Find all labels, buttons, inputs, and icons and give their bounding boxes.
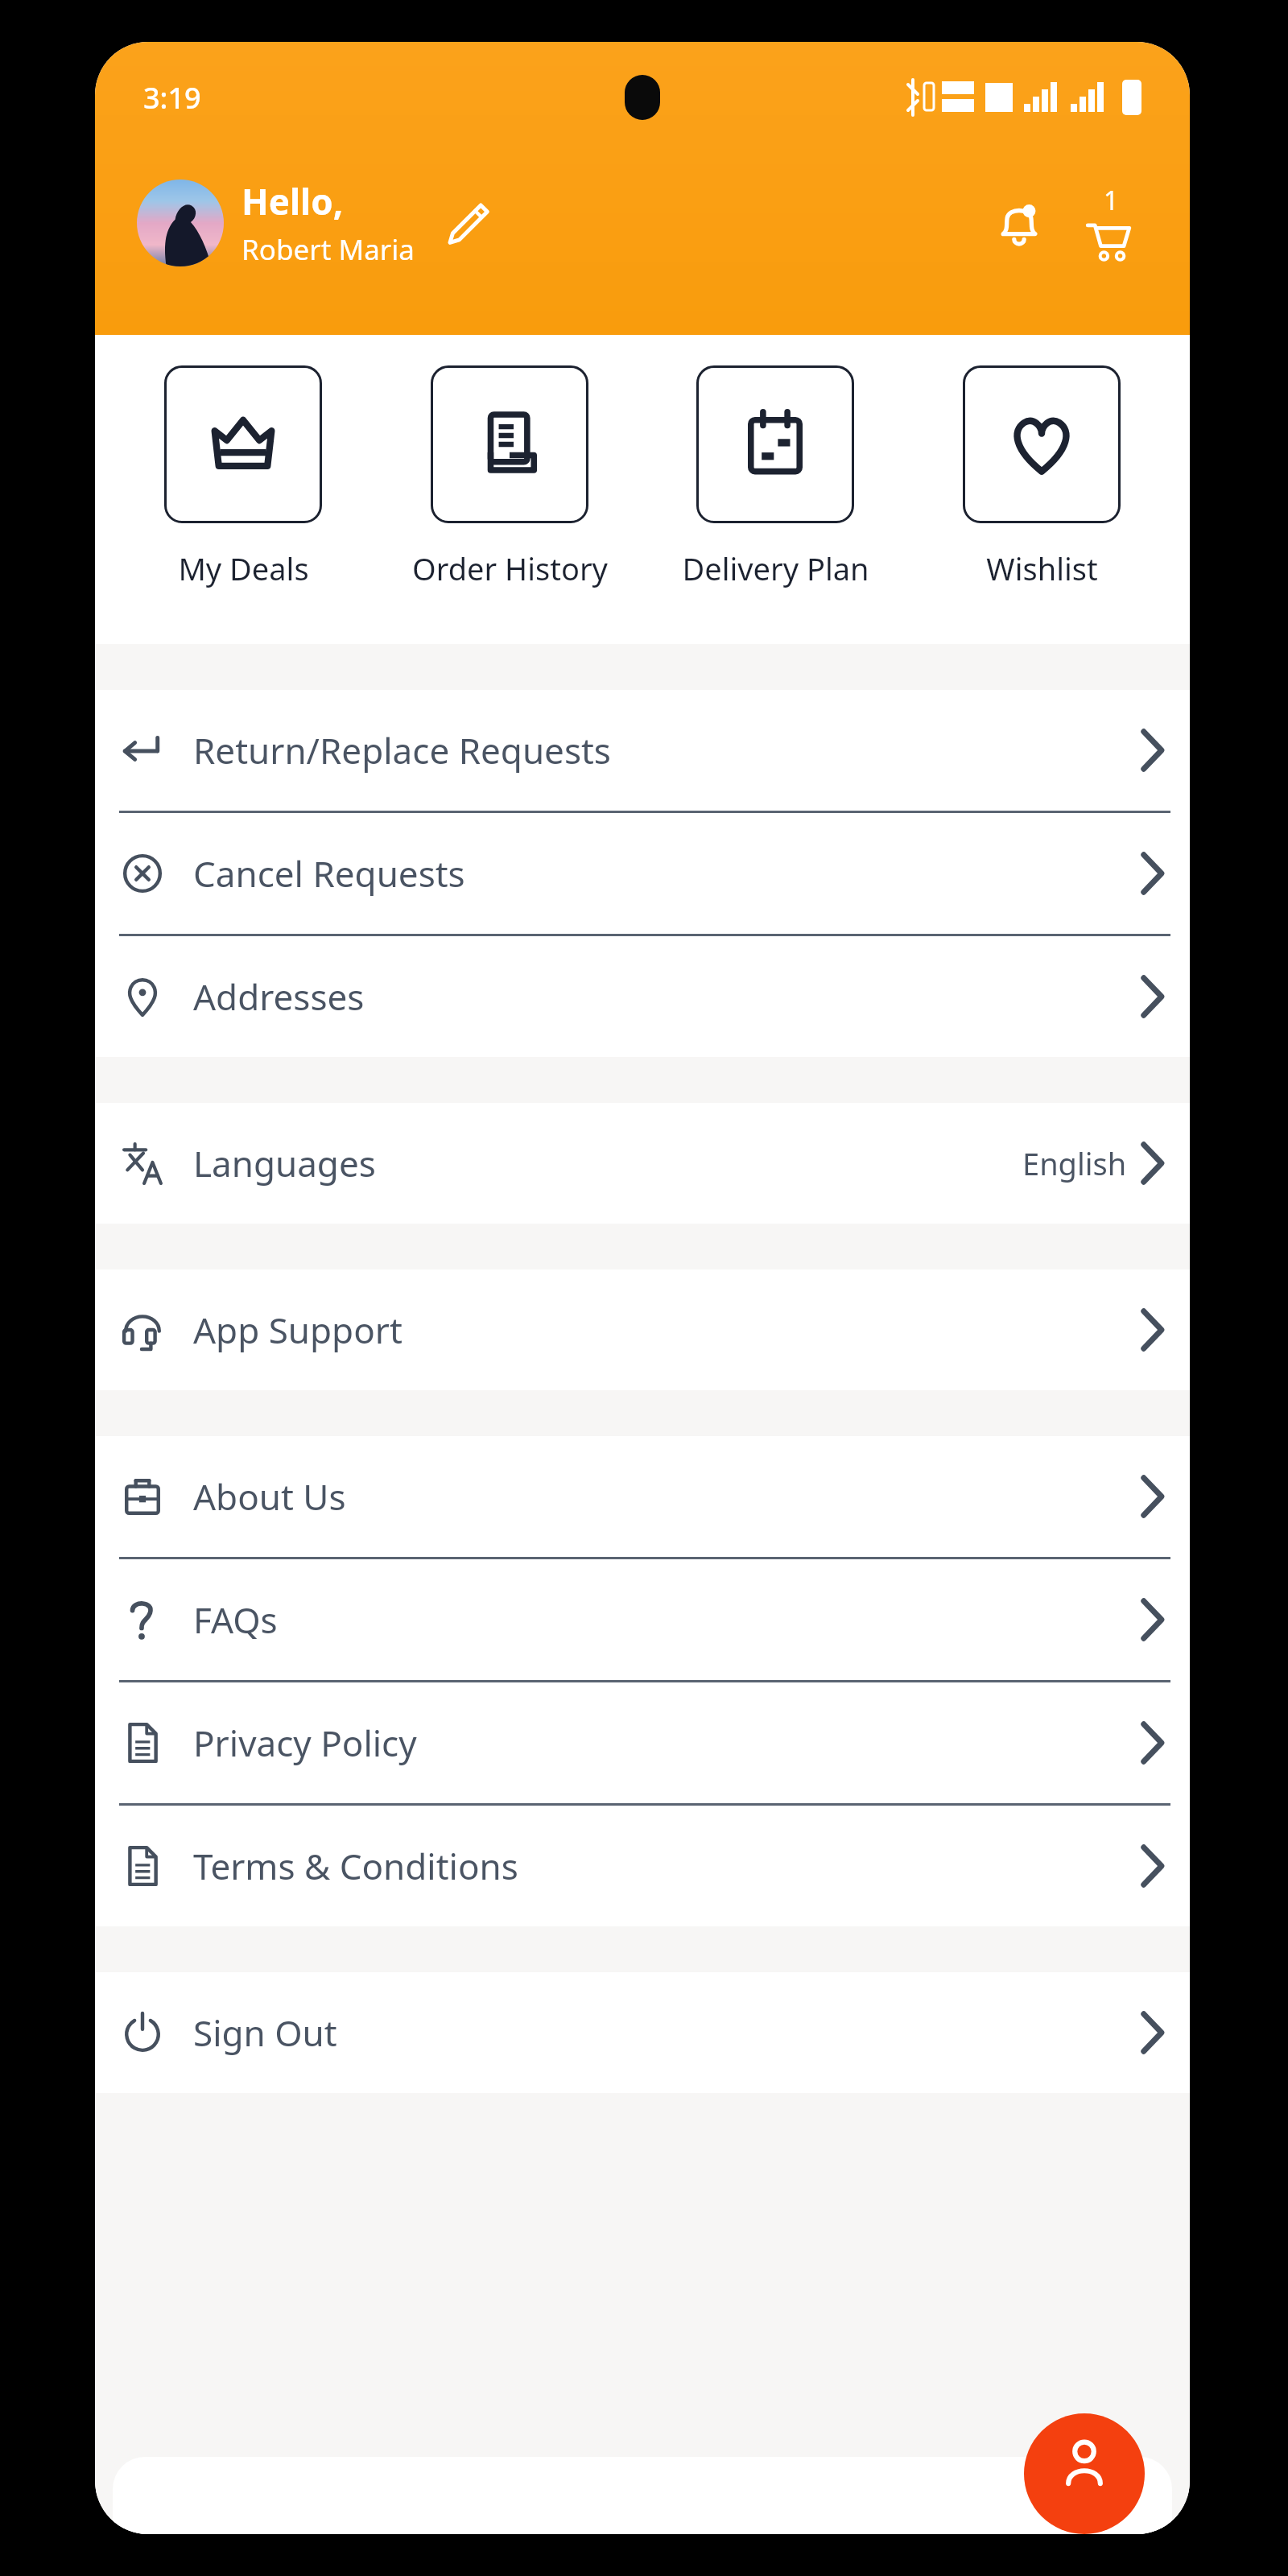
button[interactable]: My Deals	[122, 365, 364, 589]
button[interactable]: Profile picture	[137, 180, 224, 266]
staticText: About Us	[193, 1472, 346, 1521]
button[interactable]: App Support	[95, 1269, 1190, 1390]
staticText: English	[1022, 1142, 1127, 1184]
staticText: Terms & Conditions	[193, 1842, 518, 1890]
button[interactable]: Profile	[1024, 2413, 1145, 2534]
staticText: Cancel Requests	[193, 849, 465, 898]
button[interactable]: Privacy Policy	[95, 1682, 1190, 1803]
staticText: 1	[1104, 183, 1119, 218]
staticText: Languages	[193, 1139, 376, 1187]
button[interactable]: About Us	[95, 1436, 1190, 1557]
button[interactable]: Wishlist	[921, 365, 1162, 589]
staticText: Wishlist	[986, 547, 1098, 589]
button[interactable]: Languages	[95, 1103, 1190, 1224]
button[interactable]: Cart, 1 item	[1071, 183, 1151, 263]
button[interactable]: Delivery Plan	[654, 365, 896, 589]
button[interactable]: Sign Out	[95, 1972, 1190, 2093]
staticText: App Support	[193, 1306, 402, 1354]
staticText: 3:19	[143, 78, 201, 118]
staticText: Robert Maria	[242, 230, 415, 269]
button[interactable]: Addresses	[95, 936, 1190, 1057]
staticText: Delivery Plan	[682, 547, 869, 589]
staticText: My Deals	[178, 547, 309, 589]
staticText: Order History	[412, 547, 608, 589]
button[interactable]: Order History	[389, 365, 630, 589]
button[interactable]: Cancel Requests	[95, 813, 1190, 934]
button[interactable]: FAQs	[95, 1559, 1190, 1680]
staticText: FAQs	[193, 1596, 278, 1644]
staticText: Privacy Policy	[193, 1719, 417, 1767]
button[interactable]: Return/Replace Requests	[95, 690, 1190, 811]
staticText: Sign Out	[193, 2008, 337, 2057]
staticText: Addresses	[193, 972, 365, 1021]
button[interactable]: Terms & Conditions	[95, 1806, 1190, 1926]
staticText: Return/Replace Requests	[193, 726, 611, 774]
button[interactable]: Edit profile	[437, 192, 498, 254]
staticText: Hello,	[242, 177, 344, 225]
button[interactable]: Notifications	[980, 184, 1058, 262]
